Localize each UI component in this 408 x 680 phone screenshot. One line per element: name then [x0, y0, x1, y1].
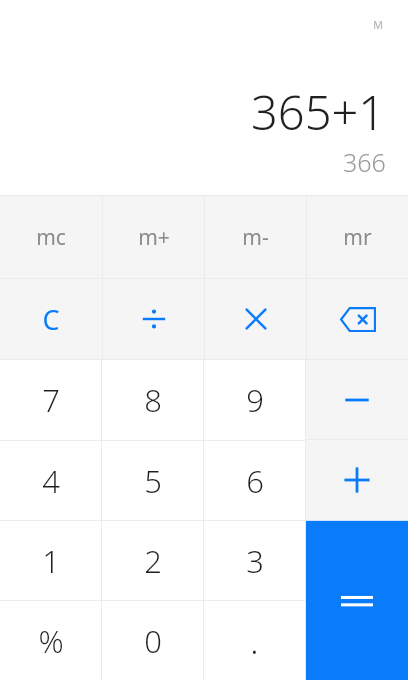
staticText: 1 — [42, 540, 60, 582]
staticText: 9 — [246, 379, 264, 421]
button[interactable]: Subtract — [306, 360, 408, 439]
button[interactable]: mc — [0, 196, 102, 278]
button[interactable]: Backspace — [307, 279, 408, 359]
staticText: mc — [36, 223, 66, 252]
button[interactable]: . — [204, 601, 305, 680]
staticText: . — [250, 618, 259, 664]
button[interactable]: Equals — [306, 521, 408, 680]
staticText: % — [38, 620, 64, 662]
button[interactable]: m+ — [103, 196, 204, 278]
staticText: m+ — [138, 223, 170, 252]
button[interactable]: 6 — [204, 441, 305, 520]
button[interactable]: 1 — [0, 521, 101, 600]
staticText: 366 — [343, 145, 386, 179]
staticText: 3 — [246, 540, 264, 582]
button[interactable]: 0 — [102, 601, 203, 680]
staticText: 0 — [144, 620, 162, 662]
button[interactable]: 3 — [204, 521, 305, 600]
button[interactable]: 7 — [0, 360, 101, 440]
staticText: 6 — [246, 460, 264, 502]
button[interactable]: m- — [205, 196, 306, 278]
button[interactable]: 4 — [0, 441, 101, 520]
button[interactable]: mr — [307, 196, 408, 278]
staticText: 4 — [42, 460, 60, 502]
staticText: 365+1 — [251, 80, 386, 144]
staticText: m- — [242, 223, 269, 252]
staticText: 8 — [144, 379, 162, 421]
staticText: 7 — [42, 379, 60, 421]
button[interactable]: Multiply — [205, 279, 306, 359]
button[interactable]: 5 — [102, 441, 203, 520]
button[interactable]: % — [0, 601, 101, 680]
staticText: mr — [343, 223, 372, 252]
staticText: 2 — [144, 540, 162, 582]
staticText: 5 — [144, 460, 162, 502]
staticText: M — [373, 17, 384, 32]
button[interactable]: Divide — [103, 279, 204, 359]
button[interactable]: 9 — [204, 360, 305, 440]
staticText: C — [42, 301, 60, 338]
button[interactable]: 8 — [102, 360, 203, 440]
button[interactable]: Add — [306, 440, 408, 520]
button[interactable]: C — [0, 279, 102, 359]
button[interactable]: 2 — [102, 521, 203, 600]
